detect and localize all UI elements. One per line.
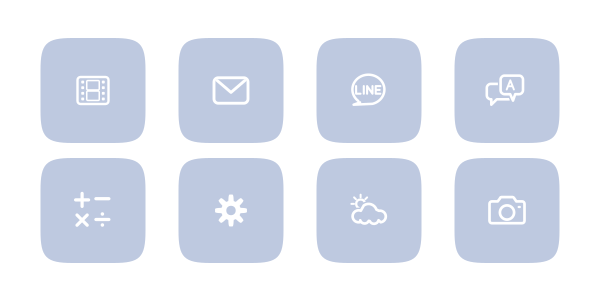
button[interactable]: Camera — [454, 158, 559, 263]
button[interactable]: LINE — [316, 38, 421, 143]
button[interactable]: Mail — [178, 38, 283, 143]
button[interactable]: Settings — [178, 158, 283, 263]
button[interactable]: Video — [40, 38, 145, 143]
button[interactable]: Weather — [316, 158, 421, 263]
button[interactable]: Translate — [454, 38, 559, 143]
button[interactable]: Calculator — [40, 158, 145, 263]
